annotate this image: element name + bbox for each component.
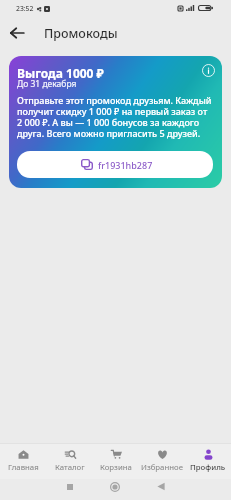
button[interactable]: Профиль	[185, 444, 231, 473]
button[interactable]: Избранное	[139, 444, 185, 473]
staticText: 23:52	[16, 4, 34, 13]
button[interactable]: fr1931hb287	[17, 151, 213, 178]
button[interactable]: Recents	[58, 476, 82, 497]
staticText: Промокоды	[44, 25, 118, 42]
staticText: Профиль	[190, 462, 226, 473]
staticText: Отправьте этот промокод друзьям. Каждый …	[17, 94, 213, 139]
staticText: Выгода 1000 ₽	[17, 65, 104, 81]
button[interactable]: Info	[200, 62, 216, 78]
staticText: Корзина	[100, 462, 132, 473]
staticText: Главная	[8, 462, 39, 473]
staticText: До 31 декабря	[17, 78, 77, 90]
button[interactable]: Home	[103, 476, 127, 497]
button[interactable]: Каталог	[47, 444, 93, 473]
staticText: Избранное	[141, 462, 183, 473]
staticText: fr1931hb287	[98, 159, 153, 171]
button[interactable]: Info	[9, 56, 222, 188]
button[interactable]: Главная	[0, 444, 47, 473]
staticText: Каталог	[55, 462, 85, 473]
button[interactable]: Back	[149, 476, 173, 497]
button[interactable]: Back	[1, 16, 33, 48]
button[interactable]: Корзина	[93, 444, 139, 473]
